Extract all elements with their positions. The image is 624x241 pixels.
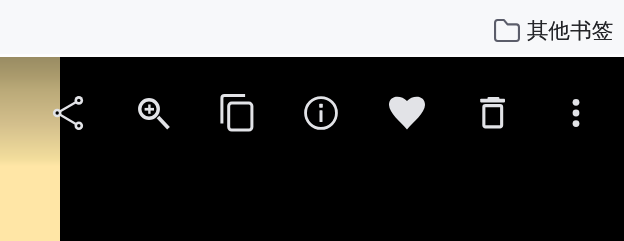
button[interactable]: Zoom in xyxy=(125,85,173,133)
staticText: 其他书签 xyxy=(527,17,614,44)
button[interactable]: Favorite xyxy=(383,89,431,137)
button[interactable]: Share xyxy=(44,89,92,137)
staticText: 其他书签 xyxy=(527,17,614,44)
button[interactable]: 其他书签 xyxy=(494,17,614,44)
button[interactable]: More options xyxy=(552,89,600,137)
button[interactable]: Copy xyxy=(212,89,260,137)
button[interactable]: Info xyxy=(297,89,345,137)
button[interactable]: Delete xyxy=(469,89,517,137)
